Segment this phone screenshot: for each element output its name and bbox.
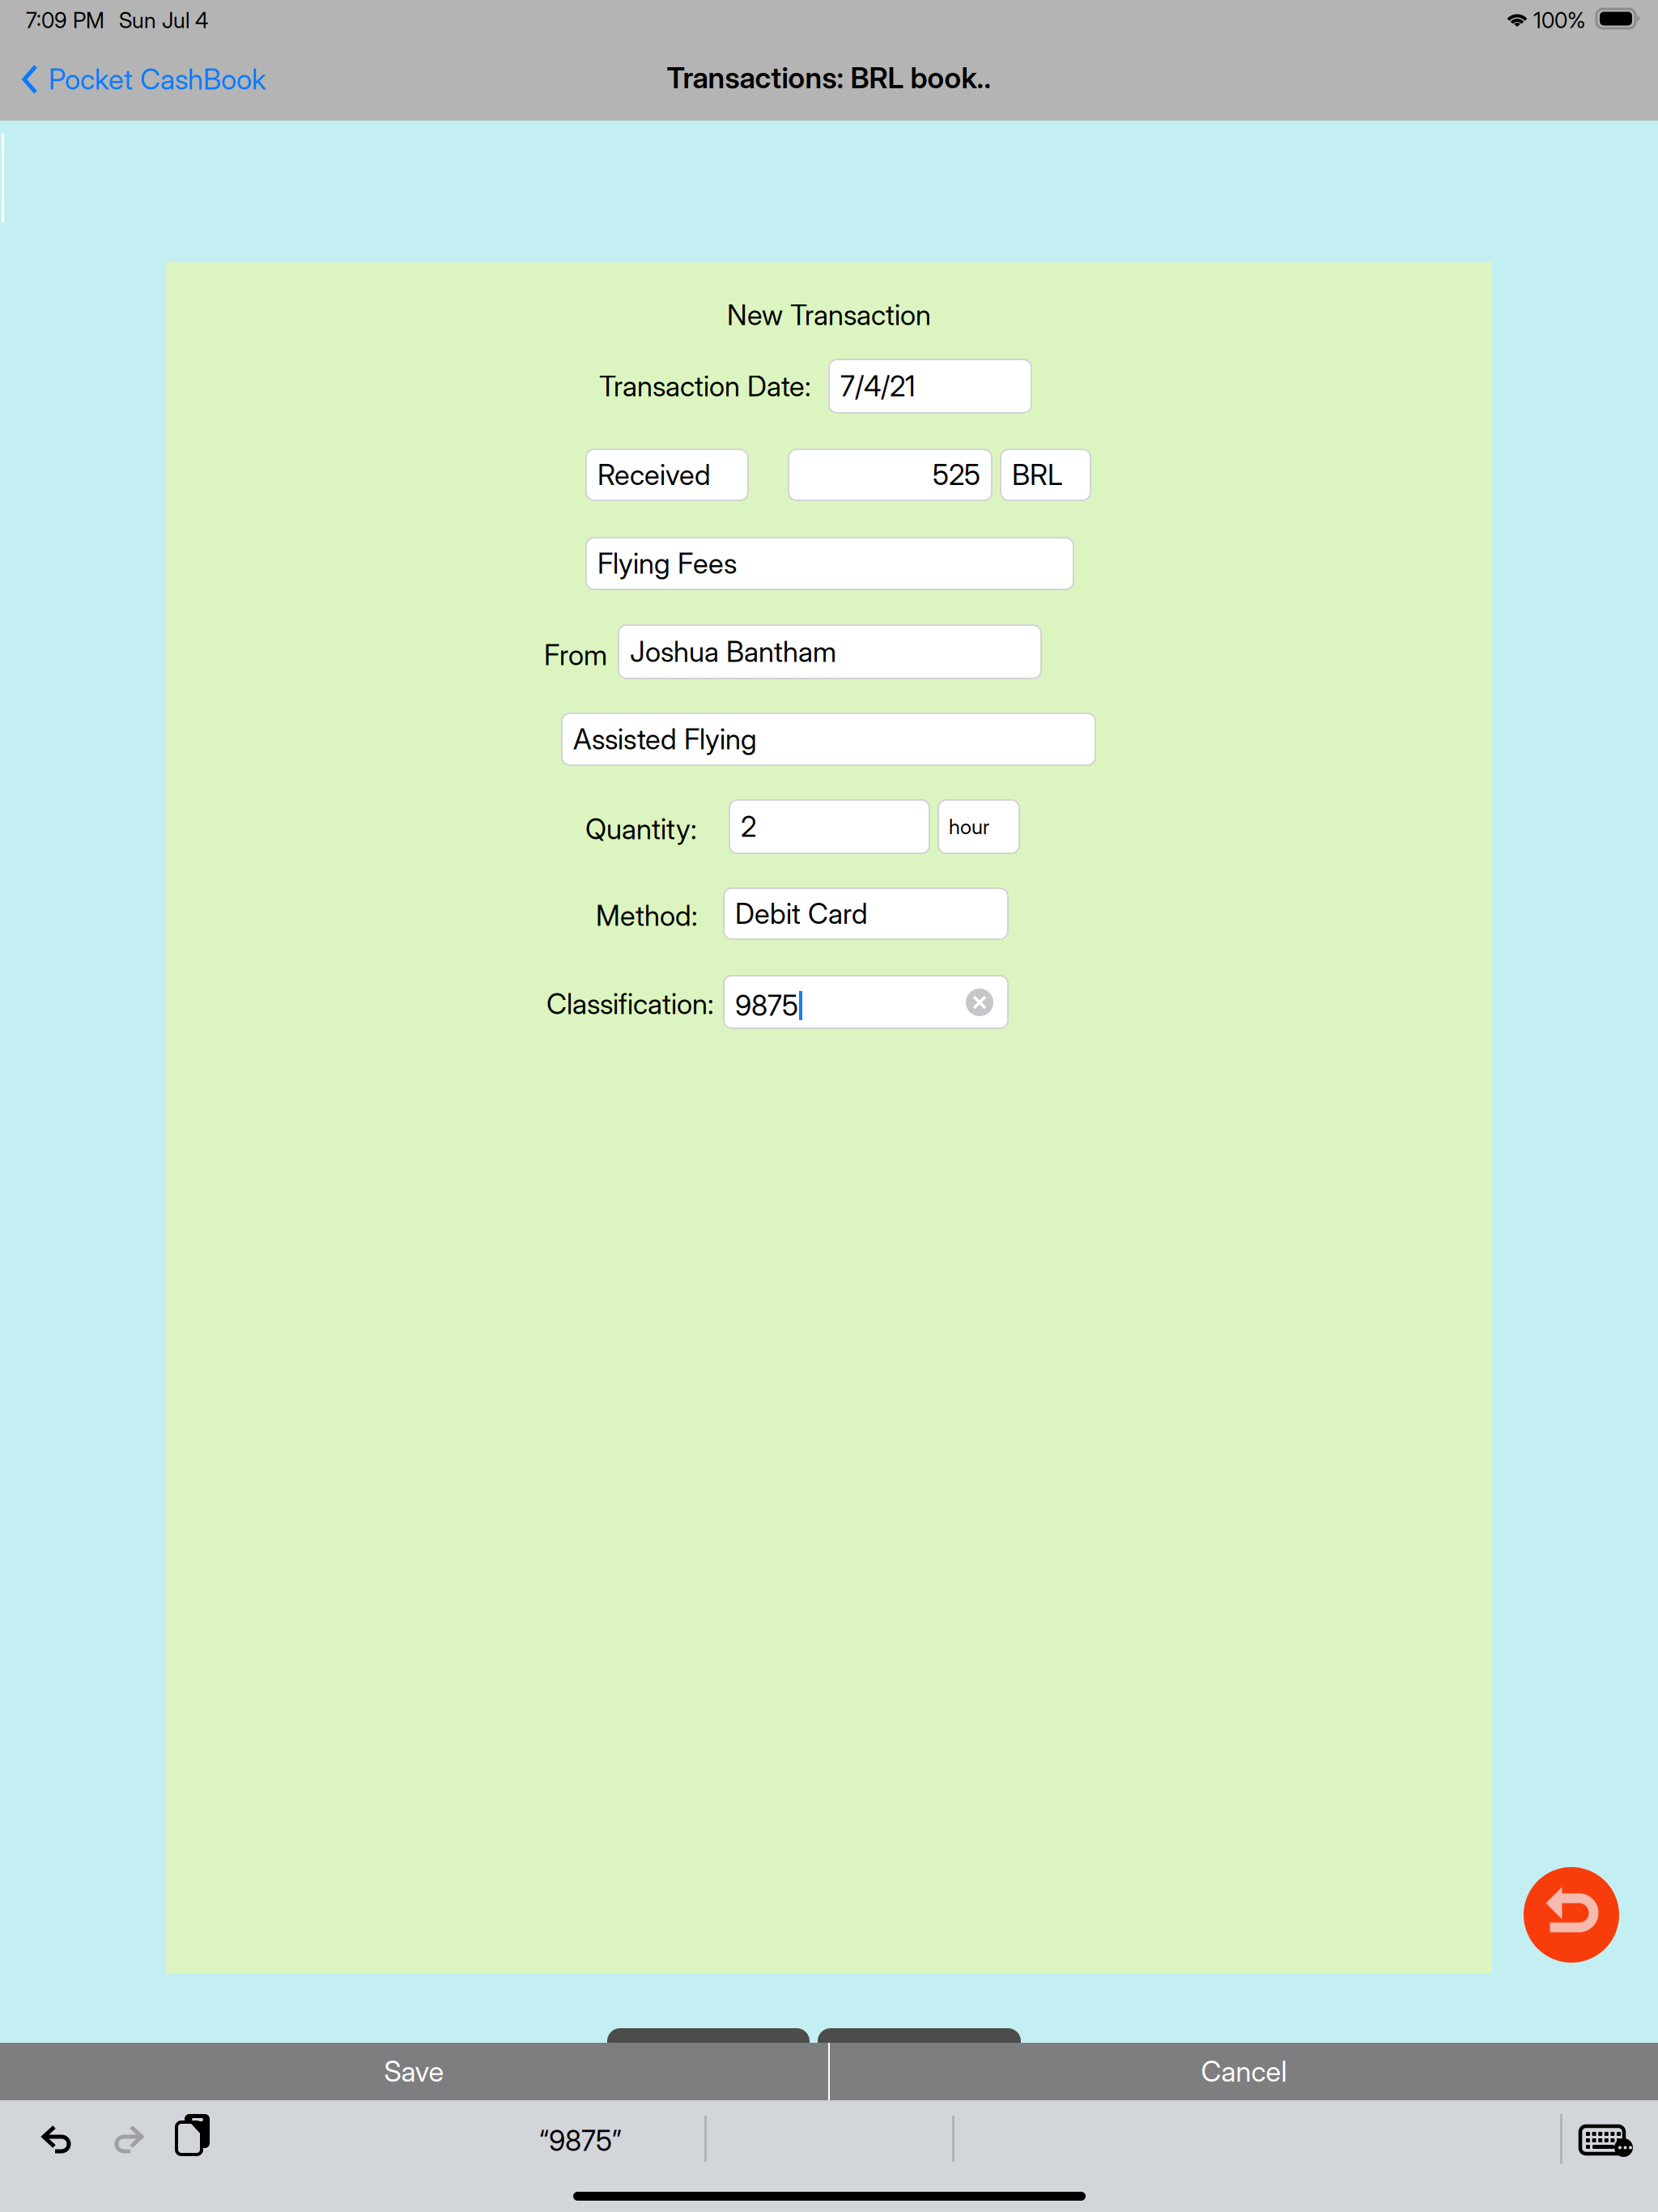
- staticText: Flying Fees: [597, 547, 737, 580]
- button[interactable]: Flying Fees: [586, 538, 1073, 589]
- button[interactable]: Received: [586, 449, 748, 500]
- staticText: Method:: [596, 899, 698, 933]
- staticText: “9875”: [539, 2124, 622, 2158]
- button[interactable]: hour: [938, 800, 1019, 853]
- staticText: Save: [384, 2055, 444, 2088]
- staticText: Received: [597, 458, 711, 492]
- staticText: Assisted Flying: [573, 722, 757, 756]
- staticText: BRL: [1012, 458, 1063, 492]
- staticText: Quantity:: [585, 812, 697, 846]
- button[interactable]: Debit Card: [724, 888, 1008, 939]
- staticText: 9875: [735, 989, 798, 1023]
- staticText: Transactions: BRL book..: [667, 60, 991, 95]
- button[interactable]: Undo: [1524, 1867, 1619, 1963]
- staticText: 525: [933, 458, 980, 492]
- button[interactable]: 2: [729, 800, 929, 853]
- staticText: hour: [949, 814, 989, 839]
- button[interactable]: Cancel: [830, 2043, 1658, 2100]
- button[interactable]: 525: [789, 449, 992, 500]
- button[interactable]: Paste: [164, 2112, 234, 2169]
- button[interactable]: Redo: [114, 2125, 184, 2181]
- button[interactable]: Save: [0, 2043, 828, 2100]
- staticText: 7:09 PM: [26, 7, 104, 33]
- staticText: From: [544, 638, 607, 672]
- button[interactable]: 9875: [724, 976, 1008, 1028]
- staticText: 100%: [1533, 7, 1586, 33]
- button[interactable]: 7/4/21: [829, 359, 1031, 413]
- staticText: Classification:: [546, 987, 714, 1021]
- staticText: 7/4/21: [840, 369, 916, 403]
- button[interactable]: Pocket CashBook: [0, 51, 279, 108]
- staticText: 2: [741, 810, 756, 844]
- staticText: Cancel: [1201, 2055, 1287, 2088]
- button[interactable]: Clear text: [966, 989, 993, 1016]
- staticText: Joshua Bantham: [630, 635, 836, 669]
- staticText: Debit Card: [735, 897, 868, 931]
- button[interactable]: Joshua Bantham: [619, 625, 1041, 678]
- button[interactable]: Keyboard options: [1575, 2124, 1648, 2180]
- button[interactable]: BRL: [1001, 449, 1090, 500]
- staticText: Sun Jul 4: [119, 7, 208, 33]
- button[interactable]: Assisted Flying: [562, 713, 1095, 765]
- staticText: Transaction Date:: [599, 369, 811, 403]
- staticText: Pocket CashBook: [49, 62, 266, 96]
- staticText: New Transaction: [727, 298, 931, 332]
- button[interactable]: Undo: [41, 2125, 111, 2181]
